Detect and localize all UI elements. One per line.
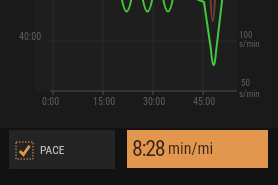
staticText: 40:00 — [19, 31, 42, 43]
staticText: 30:00 — [143, 96, 166, 108]
staticText: s/min — [239, 39, 260, 50]
staticText: 100 — [239, 30, 253, 41]
staticText: 45:00 — [193, 96, 216, 108]
staticText: 8:28 — [132, 136, 165, 162]
button[interactable]: 8:28 — [127, 130, 268, 168]
staticText: 0:00 — [42, 96, 60, 108]
staticText: 15:00 — [93, 96, 116, 108]
staticText: min/mi — [168, 139, 214, 158]
button[interactable]: PACE — [9, 130, 115, 169]
staticText: PACE — [40, 143, 65, 156]
staticText: 50 — [241, 78, 250, 89]
staticText: s/min — [239, 89, 260, 100]
